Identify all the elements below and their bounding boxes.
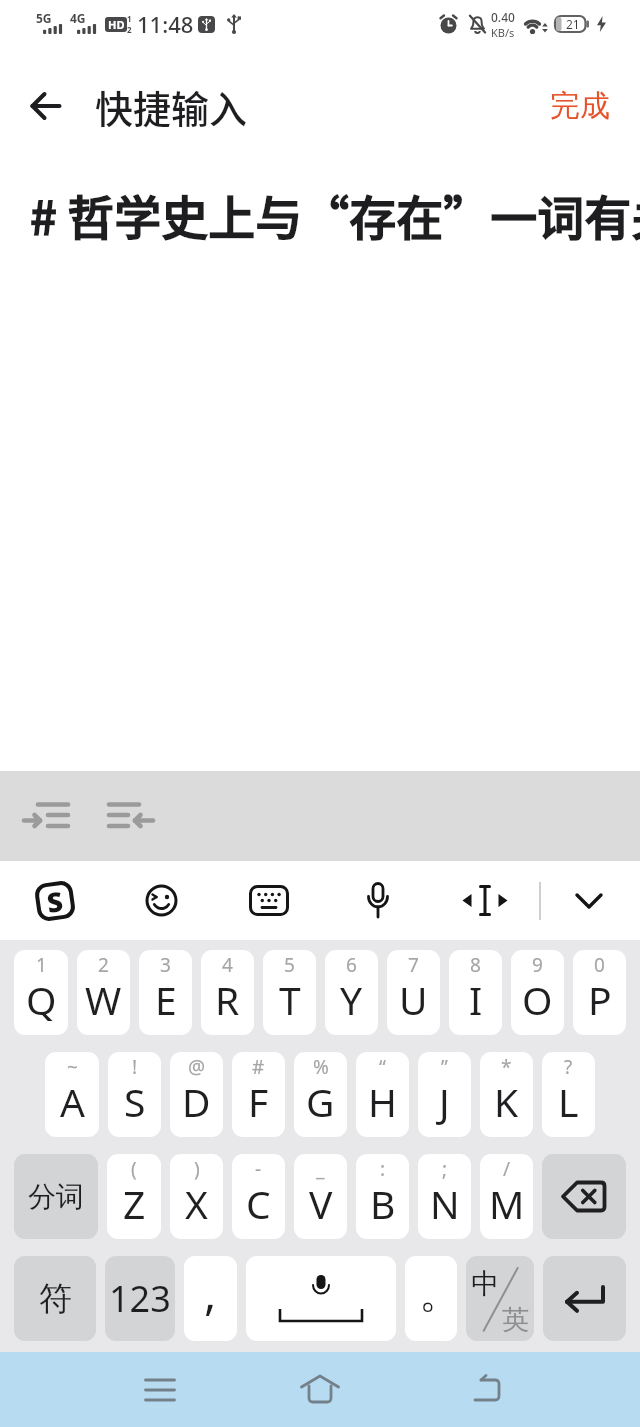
staticText: D: [182, 1075, 211, 1128]
staticText: # 哲学史上与“存在”一词有关: [30, 180, 640, 248]
button[interactable]: 8: [449, 950, 502, 1035]
staticText: N: [430, 1177, 460, 1230]
staticText: HD: [108, 17, 125, 32]
button[interactable]: 2: [77, 950, 130, 1035]
button[interactable]: [246, 1256, 396, 1341]
button[interactable]: 123: [105, 1256, 175, 1341]
button[interactable]: [462, 884, 508, 917]
button[interactable]: 5: [263, 950, 316, 1035]
button[interactable]: ;: [418, 1154, 471, 1239]
button[interactable]: [542, 1154, 626, 1239]
button[interactable]: %: [294, 1052, 347, 1137]
staticText: S: [44, 882, 65, 921]
staticText: *: [501, 1054, 512, 1080]
button[interactable]: :: [356, 1154, 409, 1239]
button[interactable]: -: [232, 1154, 285, 1239]
button[interactable]: 1: [14, 950, 68, 1035]
button[interactable]: 9: [511, 950, 564, 1035]
button[interactable]: [144, 1374, 176, 1406]
staticText: 5: [284, 952, 295, 978]
staticText: F: [248, 1075, 269, 1128]
staticText: L: [558, 1075, 579, 1128]
button[interactable]: (: [107, 1154, 161, 1239]
staticText: T: [279, 973, 301, 1026]
staticText: 。: [419, 1267, 457, 1320]
button[interactable]: [575, 893, 603, 909]
staticText: H: [368, 1075, 397, 1128]
staticText: !: [132, 1054, 138, 1080]
staticText: U: [399, 973, 428, 1026]
button[interactable]: @: [170, 1052, 223, 1137]
button[interactable]: 7: [387, 950, 440, 1035]
button[interactable]: 3: [139, 950, 192, 1035]
staticText: 4: [222, 952, 233, 978]
staticText: 英: [502, 1303, 529, 1337]
button[interactable]: !: [108, 1052, 161, 1137]
button[interactable]: [109, 802, 155, 830]
staticText: 9: [532, 952, 543, 978]
staticText: O: [522, 973, 553, 1026]
button[interactable]: 中: [466, 1256, 534, 1341]
staticText: 6: [346, 952, 357, 978]
staticText: 符: [39, 1278, 72, 1320]
button[interactable]: [249, 885, 289, 916]
staticText: @: [188, 1054, 206, 1080]
button[interactable]: 。: [405, 1256, 457, 1341]
button[interactable]: [365, 882, 391, 919]
staticText: R: [215, 973, 240, 1026]
staticText: S: [124, 1075, 146, 1128]
staticText: 1: [127, 13, 132, 24]
button[interactable]: 4: [201, 950, 254, 1035]
staticText: 8: [470, 952, 481, 978]
button[interactable]: ): [170, 1154, 223, 1239]
staticText: ): [194, 1156, 200, 1182]
button[interactable]: 6: [325, 950, 378, 1035]
staticText: V: [309, 1177, 333, 1230]
staticText: G: [306, 1075, 335, 1128]
button[interactable]: ~: [45, 1052, 99, 1137]
staticText: A: [60, 1075, 85, 1128]
button[interactable]: _: [294, 1154, 347, 1239]
staticText: Y: [340, 973, 363, 1026]
staticText: 21: [566, 16, 580, 32]
staticText: J: [439, 1075, 450, 1128]
staticText: 2: [127, 24, 132, 35]
staticText: #: [252, 1054, 265, 1080]
staticText: M: [489, 1177, 525, 1230]
button[interactable]: [24, 802, 70, 830]
button[interactable]: 符: [14, 1256, 96, 1341]
button[interactable]: [31, 91, 61, 121]
staticText: Q: [26, 973, 57, 1026]
staticText: “: [379, 1054, 386, 1080]
staticText: C: [246, 1177, 271, 1230]
staticText: 7: [408, 952, 419, 978]
button[interactable]: [470, 1374, 504, 1406]
button[interactable]: /: [480, 1154, 533, 1239]
staticText: X: [185, 1177, 208, 1230]
staticText: ?: [564, 1054, 573, 1080]
button[interactable]: “: [356, 1052, 409, 1137]
button[interactable]: 分词: [14, 1154, 98, 1239]
staticText: 快捷输入: [95, 79, 248, 134]
button[interactable]: ?: [542, 1052, 595, 1137]
button[interactable]: [145, 884, 178, 917]
staticText: 123: [109, 1274, 171, 1323]
button[interactable]: 0: [573, 950, 626, 1035]
button[interactable]: [300, 1373, 340, 1407]
button[interactable]: [543, 1256, 626, 1341]
staticText: /: [503, 1156, 511, 1182]
staticText: :: [380, 1156, 386, 1182]
staticText: I: [469, 973, 483, 1026]
button[interactable]: 完成: [550, 87, 610, 125]
staticText: 11:48: [137, 9, 194, 39]
button[interactable]: ,: [184, 1256, 237, 1341]
staticText: K: [494, 1075, 519, 1128]
staticText: 2: [98, 952, 109, 978]
button[interactable]: *: [480, 1052, 533, 1137]
button[interactable]: #: [232, 1052, 285, 1137]
button[interactable]: S: [34, 880, 76, 922]
staticText: ;: [442, 1156, 448, 1182]
staticText: -: [255, 1156, 262, 1182]
staticText: 4G: [70, 10, 86, 26]
button[interactable]: ”: [418, 1052, 471, 1137]
